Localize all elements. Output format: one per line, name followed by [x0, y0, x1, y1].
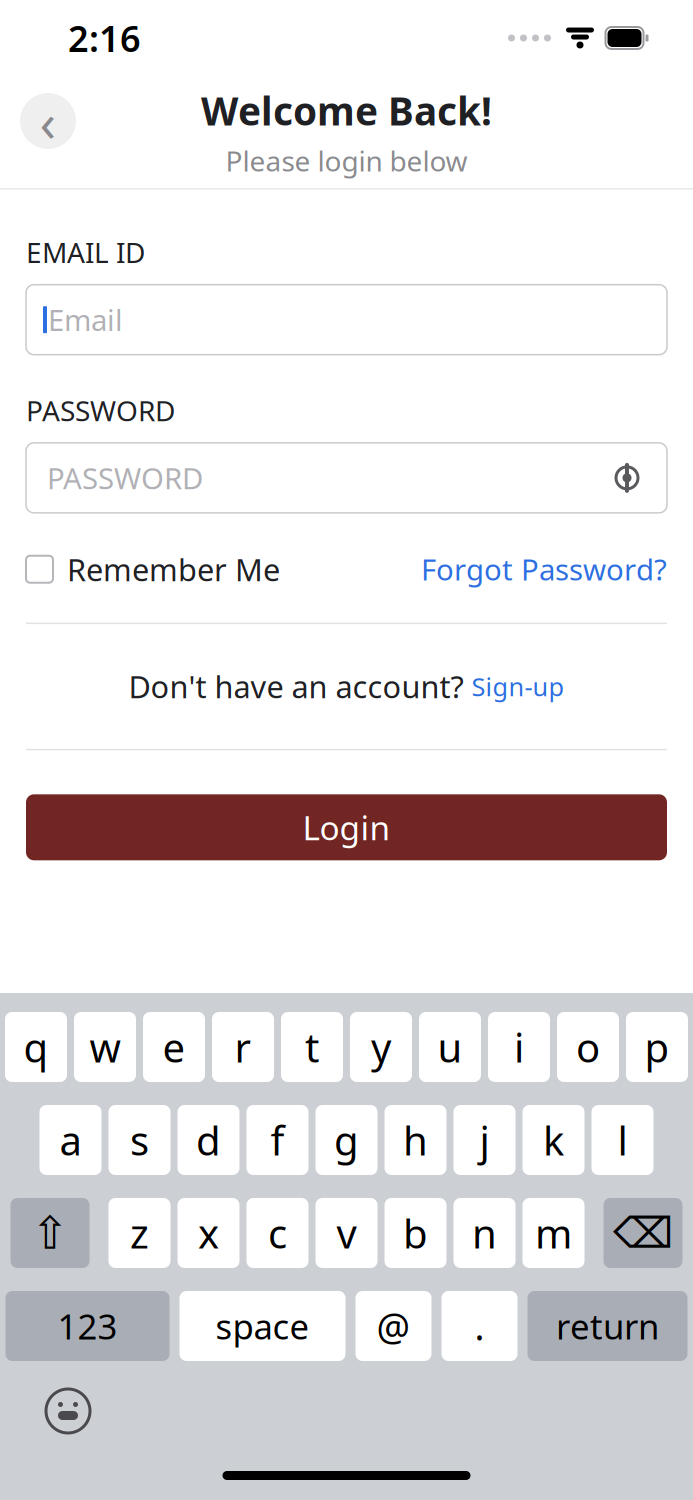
staticText: Remember Me — [67, 549, 280, 590]
staticText: v — [336, 1206, 356, 1259]
staticText: Please login below — [225, 142, 467, 179]
button[interactable]: p — [626, 1012, 688, 1082]
staticText: . — [474, 1301, 484, 1351]
button[interactable]: e — [143, 1012, 205, 1082]
staticText: i — [514, 1020, 524, 1073]
staticText: Email — [48, 300, 123, 339]
button[interactable]: Shift — [10, 1198, 89, 1268]
button[interactable]: y — [350, 1012, 412, 1082]
button[interactable]: t — [281, 1012, 343, 1082]
button[interactable]: h — [384, 1105, 446, 1175]
staticText: 2:16 — [68, 14, 141, 62]
staticText: n — [472, 1206, 497, 1259]
button[interactable]: d — [177, 1105, 239, 1175]
staticText: space — [215, 1303, 309, 1349]
staticText: Sign-up — [471, 670, 564, 703]
staticText: s — [130, 1113, 149, 1166]
button[interactable]: Remember Me — [26, 543, 280, 596]
staticText: k — [543, 1113, 564, 1166]
button[interactable]: i — [488, 1012, 550, 1082]
button[interactable]: m — [522, 1198, 584, 1268]
staticText: Login — [302, 805, 390, 849]
button[interactable]: Login — [26, 794, 667, 860]
staticText: t — [305, 1020, 319, 1073]
button[interactable]: b — [384, 1198, 446, 1268]
button[interactable]: o — [557, 1012, 619, 1082]
button[interactable]: g — [315, 1105, 377, 1175]
staticText: p — [644, 1020, 669, 1073]
button[interactable]: return — [527, 1291, 687, 1361]
button[interactable]: q — [5, 1012, 67, 1082]
staticText: Welcome Back! — [201, 85, 492, 136]
button[interactable]: space — [179, 1291, 345, 1361]
button[interactable]: 123 — [5, 1291, 169, 1361]
button[interactable]: z — [108, 1198, 170, 1268]
staticText: d — [196, 1113, 221, 1166]
staticText: g — [334, 1113, 359, 1166]
button[interactable]: l — [591, 1105, 653, 1175]
button[interactable]: @ — [355, 1291, 431, 1361]
staticText: j — [479, 1113, 489, 1166]
button[interactable]: a — [39, 1105, 101, 1175]
staticText: EMAIL ID — [26, 233, 145, 271]
staticText: Forgot Password? — [421, 550, 667, 589]
staticText: ⇧ — [31, 1207, 69, 1259]
button[interactable]: x — [177, 1198, 239, 1268]
staticText: f — [270, 1113, 284, 1166]
button[interactable]: Emoji — [40, 1383, 96, 1439]
button[interactable]: . — [441, 1291, 517, 1361]
button[interactable]: k — [522, 1105, 584, 1175]
button[interactable]: w — [74, 1012, 136, 1082]
staticText: o — [576, 1020, 600, 1073]
staticText: h — [403, 1113, 428, 1166]
staticText: w — [89, 1020, 120, 1073]
staticText: m — [535, 1206, 572, 1259]
staticText: PASSWORD — [26, 392, 175, 429]
staticText: z — [130, 1206, 149, 1259]
button[interactable]: Forgot Password? — [421, 544, 667, 595]
button[interactable]: v — [315, 1198, 377, 1268]
button[interactable]: u — [419, 1012, 481, 1082]
button[interactable]: n — [453, 1198, 515, 1268]
staticText: e — [162, 1020, 185, 1073]
staticText: 123 — [57, 1303, 117, 1349]
staticText: a — [59, 1113, 81, 1166]
button[interactable]: f — [246, 1105, 308, 1175]
staticText: return — [556, 1303, 659, 1349]
staticText: r — [234, 1020, 251, 1073]
button[interactable]: Delete — [603, 1198, 682, 1268]
staticText: @ — [376, 1301, 410, 1351]
button[interactable]: Sign-up — [471, 670, 564, 703]
staticText: y — [371, 1020, 391, 1073]
staticText: b — [403, 1206, 428, 1259]
staticText: ‹ — [39, 86, 56, 156]
button[interactable]: Back — [20, 93, 76, 149]
button[interactable]: s — [108, 1105, 170, 1175]
staticText: x — [198, 1206, 219, 1259]
staticText: l — [617, 1113, 627, 1166]
staticText: u — [437, 1020, 462, 1073]
button[interactable]: c — [246, 1198, 308, 1268]
staticText: c — [268, 1206, 287, 1259]
button[interactable]: r — [212, 1012, 274, 1082]
staticText: ⌫ — [613, 1209, 673, 1257]
button[interactable]: j — [453, 1105, 515, 1175]
staticText: Don't have an account? — [128, 666, 471, 707]
staticText: PASSWORD — [47, 458, 203, 497]
staticText: q — [23, 1020, 48, 1073]
